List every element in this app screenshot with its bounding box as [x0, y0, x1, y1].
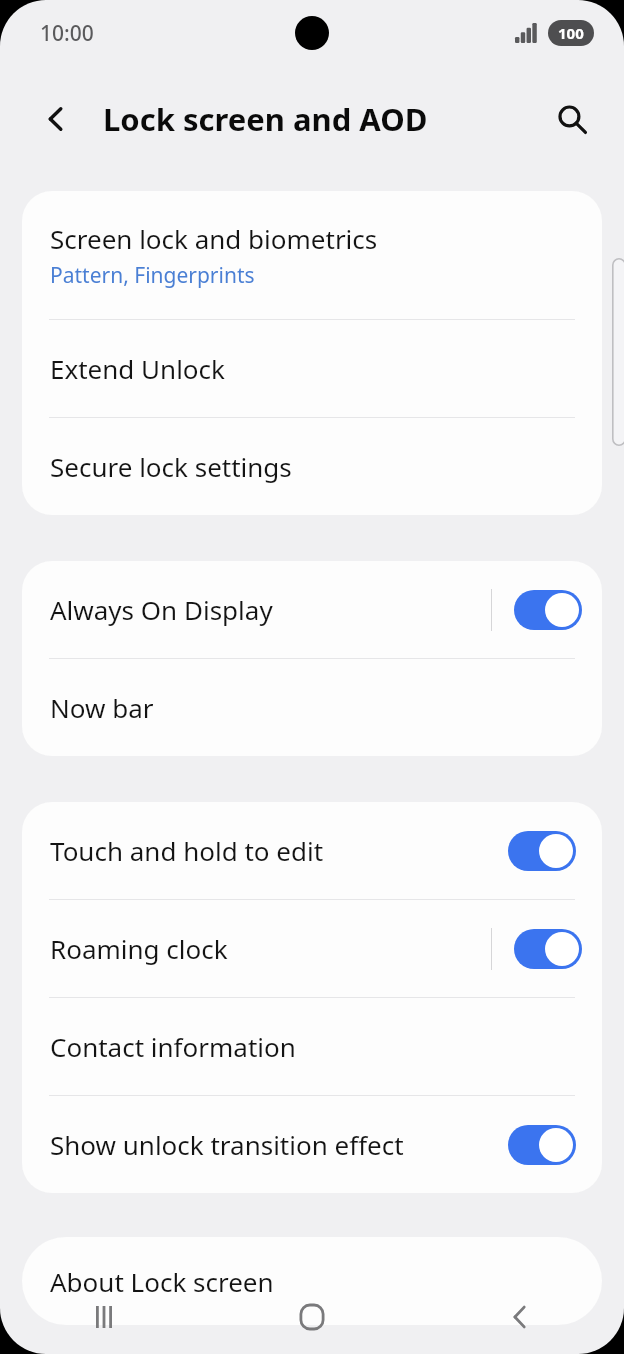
staticText: 10:00: [40, 19, 94, 48]
staticText: Now bar: [50, 690, 154, 725]
button[interactable]: Touch and hold to edit: [22, 802, 602, 899]
button[interactable]: Always On Display: [22, 561, 602, 658]
button[interactable]: Show unlock transition effect: [22, 1096, 602, 1193]
staticText: Contact information: [50, 1029, 296, 1064]
button[interactable]: Toggle on: [508, 831, 576, 871]
button[interactable]: Search: [542, 89, 602, 149]
button[interactable]: Home: [208, 1280, 416, 1354]
staticText: About Lock screen: [50, 1264, 274, 1299]
button[interactable]: Toggle on: [514, 590, 582, 630]
staticText: Roaming clock: [50, 931, 228, 966]
button[interactable]: Back: [26, 89, 86, 149]
staticText: 100: [558, 23, 584, 43]
button[interactable]: Extend Unlock: [22, 320, 602, 417]
button[interactable]: Recent apps: [0, 1280, 208, 1354]
button[interactable]: Toggle on: [508, 1125, 576, 1165]
staticText: Lock screen and AOD: [103, 98, 428, 140]
button[interactable]: About Lock screen: [22, 1237, 602, 1325]
staticText: Screen lock and biometrics: [50, 221, 378, 256]
button[interactable]: Roaming clock: [22, 900, 602, 997]
staticText: Touch and hold to edit: [50, 833, 324, 868]
button[interactable]: Now bar: [22, 659, 602, 756]
button[interactable]: Toggle on: [514, 929, 582, 969]
button[interactable]: Screen lock and biometrics: [22, 191, 602, 319]
staticText: Pattern, Fingerprints: [50, 261, 255, 290]
staticText: Show unlock transition effect: [50, 1127, 404, 1162]
staticText: Always On Display: [50, 592, 273, 627]
staticText: Extend Unlock: [50, 351, 225, 386]
button[interactable]: Secure lock settings: [22, 418, 602, 515]
button[interactable]: Contact information: [22, 998, 602, 1095]
staticText: Secure lock settings: [50, 449, 292, 484]
button[interactable]: Back: [416, 1280, 624, 1354]
